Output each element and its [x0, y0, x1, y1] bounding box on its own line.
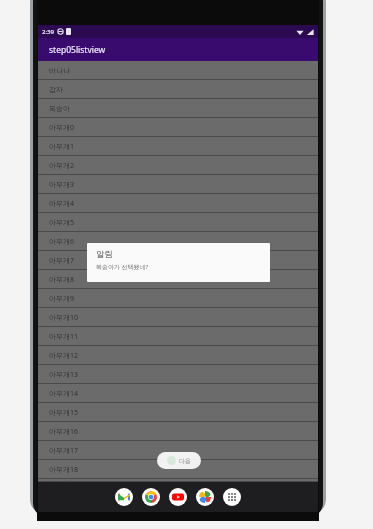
staticText: 복숭아	[49, 104, 70, 113]
button[interactable]: 아무개4	[38, 194, 318, 213]
staticText: 아무개13	[49, 370, 79, 380]
button[interactable]: Chrome	[142, 488, 160, 506]
staticText: 아무개7	[49, 256, 75, 266]
staticText: 알림	[96, 249, 113, 260]
button[interactable]: 감자	[38, 80, 318, 99]
button[interactable]: Gmail	[115, 488, 133, 506]
button[interactable]: 아무개7	[38, 251, 318, 270]
button[interactable]: 아무개16	[38, 422, 318, 441]
button[interactable]: 아무개13	[38, 365, 318, 384]
staticText: 아무개17	[49, 446, 79, 456]
button[interactable]: 아무개5	[38, 213, 318, 232]
button[interactable]: 다음	[157, 452, 201, 469]
staticText: 감자	[49, 85, 63, 94]
staticText: 다음	[179, 457, 191, 465]
button[interactable]: 아무개0	[38, 118, 318, 137]
staticText: 아무개10	[49, 313, 79, 323]
staticText: 아무개14	[49, 389, 79, 399]
button[interactable]: 아무개15	[38, 403, 318, 422]
staticText: 아무개4	[49, 199, 75, 209]
button[interactable]: 아무개9	[38, 289, 318, 308]
staticText: 아무개19	[49, 479, 79, 482]
staticText: 아무개9	[49, 294, 75, 304]
staticText: 아무개5	[49, 218, 75, 228]
button[interactable]: YouTube	[169, 488, 187, 506]
staticText: 아무개16	[49, 427, 79, 437]
staticText: 아무개0	[49, 123, 75, 133]
staticText: 아무개2	[49, 161, 75, 171]
button[interactable]: 아무개1	[38, 137, 318, 156]
staticText: 아무개1	[49, 142, 75, 152]
staticText: 2:39	[42, 28, 54, 36]
button[interactable]: 바나나	[38, 61, 318, 80]
button[interactable]: 아무개2	[38, 156, 318, 175]
button[interactable]: 아무개18	[38, 460, 318, 479]
staticText: 복숭아가 선택됐네?	[96, 263, 149, 271]
button[interactable]: Photos	[196, 488, 214, 506]
button[interactable]: 아무개8	[38, 270, 318, 289]
staticText: 아무개3	[49, 180, 75, 190]
staticText: 아무개11	[49, 332, 79, 342]
button[interactable]: 아무개3	[38, 175, 318, 194]
staticText: 아무개8	[49, 275, 75, 285]
button[interactable]: 아무개6	[38, 232, 318, 251]
button[interactable]: 아무개11	[38, 327, 318, 346]
button[interactable]: 알림	[87, 243, 270, 282]
button[interactable]: All apps	[223, 488, 241, 506]
button[interactable]: 아무개17	[38, 441, 318, 460]
staticText: 바나나	[49, 66, 70, 75]
button[interactable]: 아무개14	[38, 384, 318, 403]
staticText: 아무개12	[49, 351, 79, 361]
button[interactable]: step05listview	[38, 38, 318, 61]
button[interactable]: 아무개10	[38, 308, 318, 327]
staticText: 아무개15	[49, 408, 79, 418]
staticText: 아무개18	[49, 465, 79, 475]
button[interactable]: 아무개12	[38, 346, 318, 365]
button[interactable]: 아무개19	[38, 479, 318, 482]
staticText: 아무개6	[49, 237, 75, 247]
button[interactable]: 복숭아	[38, 99, 318, 118]
staticText: step05listview	[49, 44, 106, 56]
